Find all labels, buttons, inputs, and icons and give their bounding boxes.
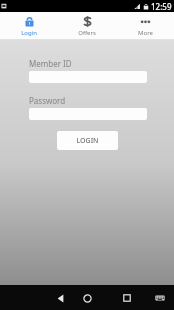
button[interactable]: Switch keyboard [152, 290, 168, 306]
staticText: Password [29, 95, 66, 106]
staticText: More [138, 29, 153, 37]
button[interactable]: Recent apps [119, 290, 135, 306]
staticText: Member ID [29, 58, 72, 69]
staticText: Offers [78, 29, 96, 37]
button[interactable]: Offers [58, 13, 116, 39]
button[interactable]: Login [0, 13, 58, 39]
staticText: 12:59 [151, 1, 172, 12]
staticText: LOGIN [76, 136, 99, 146]
staticText: Login [21, 29, 37, 37]
button[interactable]: Back [52, 290, 68, 306]
button[interactable]: More [116, 13, 174, 39]
button[interactable]: Home [79, 290, 95, 306]
button[interactable]: LOGIN [57, 131, 118, 150]
